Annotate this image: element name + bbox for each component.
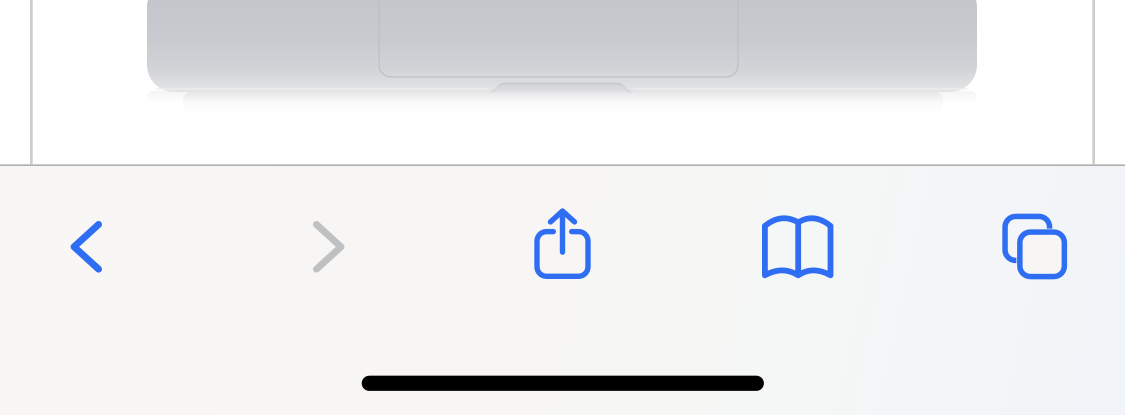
button[interactable]: Share bbox=[502, 197, 622, 293]
button[interactable]: Forward bbox=[269, 199, 389, 295]
button[interactable]: Back bbox=[26, 199, 146, 295]
button[interactable]: Tabs bbox=[975, 198, 1095, 294]
button[interactable]: Bookmarks bbox=[738, 199, 858, 295]
